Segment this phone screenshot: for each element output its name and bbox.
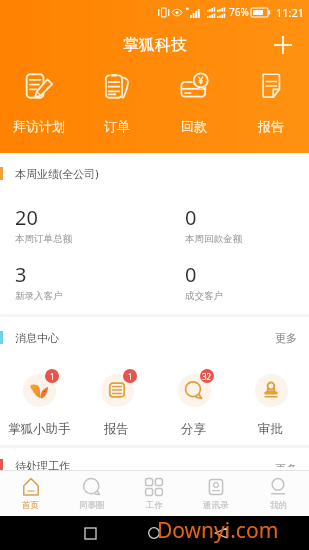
button[interactable]: 1 [0, 369, 78, 437]
button[interactable]: 拜访计划 [0, 72, 78, 134]
button[interactable]: Add [269, 31, 297, 59]
staticText: 掌狐小助手 [8, 421, 71, 437]
staticText: 本周业绩(全公司) [15, 166, 99, 181]
staticText: 我的 [270, 500, 287, 511]
staticText: 本周回款金额 [185, 233, 242, 245]
staticText: 更多 [275, 331, 297, 344]
staticText: 审批 [258, 421, 283, 437]
staticText: 分享 [181, 421, 206, 437]
staticText: 本周订单总额 [15, 233, 72, 245]
staticText: 通讯录 [203, 500, 229, 511]
staticText: 0 [185, 261, 197, 288]
button[interactable]: Home [141, 520, 167, 546]
button[interactable]: 订单 [78, 72, 155, 134]
staticText: 20 [15, 204, 38, 231]
staticText: 首页 [22, 500, 39, 511]
staticText: 拜访计划 [13, 118, 65, 134]
staticText: 0 [185, 204, 197, 231]
staticText: 待处理工作 [15, 459, 70, 470]
staticText: 报告 [104, 421, 129, 437]
staticText: 报告 [258, 118, 284, 134]
button[interactable]: Recents [77, 520, 103, 546]
staticText: 订单 [104, 118, 130, 134]
staticText: 消息中心 [15, 331, 59, 345]
button[interactable]: 回款 [155, 72, 232, 134]
button[interactable]: 更多 [272, 459, 300, 470]
staticText: 11:21 [276, 5, 305, 20]
button[interactable]: 我的 [247, 471, 309, 516]
button[interactable]: 同事圈 [61, 471, 123, 516]
staticText: 回款 [181, 118, 207, 134]
staticText: 工作 [146, 500, 163, 511]
staticText: Downyi.com [157, 516, 279, 545]
button[interactable]: Back [208, 520, 234, 546]
staticText: 1 [50, 371, 55, 382]
staticText: 76% [229, 5, 249, 19]
button[interactable]: 工作 [123, 471, 185, 516]
staticText: 掌狐科技 [123, 35, 187, 55]
staticText: 3 [15, 261, 27, 288]
staticText: 成交客户 [185, 290, 223, 302]
button[interactable]: 首页 [0, 471, 61, 516]
staticText: 新录入客户 [15, 290, 63, 302]
staticText: 1 [128, 371, 133, 382]
staticText: 更多 [275, 462, 297, 467]
staticText: 同事圈 [79, 500, 105, 511]
button[interactable]: 更多 [272, 328, 300, 347]
button[interactable]: 报告 [232, 72, 309, 134]
button[interactable]: 32 [155, 369, 232, 437]
button[interactable]: 1 [78, 369, 155, 437]
staticText: 32 [202, 371, 212, 382]
button[interactable]: 审批 [232, 369, 309, 437]
button[interactable]: 通讯录 [185, 471, 247, 516]
